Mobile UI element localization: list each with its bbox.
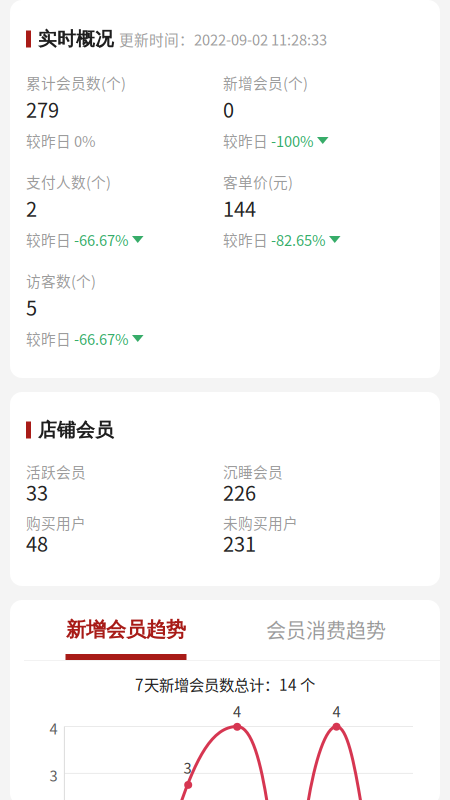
staticText: 购买用户 [26,512,86,533]
staticText: -100% [271,130,314,151]
staticText: 客单价(元) [223,171,293,192]
staticText: 4 [332,700,340,721]
staticText: 较昨日 [223,130,271,151]
staticText: 较昨日 [26,130,74,151]
staticText: -66.67% [74,229,129,250]
staticText: 0 [223,94,234,123]
staticText: 231 [223,528,256,557]
staticText: 48 [26,528,48,557]
staticText: 4 [233,700,241,721]
button[interactable]: 新增会员趋势 [26,619,226,660]
staticText: 未购买用户 [223,512,298,533]
staticText: -66.67% [74,328,129,349]
staticText: 较昨日 [26,328,74,349]
staticText: 144 [223,193,256,222]
staticText: 7天新增会员数总计：14 个 [135,673,315,695]
staticText: 33 [26,477,48,506]
staticText: 活跃会员 [26,461,86,482]
staticText: 店铺会员 [38,418,114,442]
staticText: 实时概况 [38,27,114,51]
staticText: 会员消费趋势 [266,615,386,644]
button[interactable]: 会员消费趋势 [226,619,426,660]
staticText: 0% [74,130,96,151]
staticText: 更新时间：2022-09-02 11:28:33 [119,28,327,50]
staticText: 支付人数(个) [26,171,111,192]
staticText: 访客数(个) [26,270,96,291]
staticText: 较昨日 [223,229,271,250]
staticText: 5 [26,292,37,321]
staticText: 2 [26,193,37,222]
staticText: -82.65% [271,229,326,250]
staticText: 新增会员(个) [223,72,308,93]
staticText: 3 [183,757,191,778]
staticText: 累计会员数(个) [26,72,126,93]
staticText: 较昨日 [26,229,74,250]
staticText: 279 [26,94,59,123]
staticText: 新增会员趋势 [66,617,186,642]
staticText: 226 [223,477,256,506]
staticText: 4 [50,717,58,739]
staticText: 沉睡会员 [223,461,283,482]
staticText: 3 [50,764,58,786]
